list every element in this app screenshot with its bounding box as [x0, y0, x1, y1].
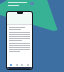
button[interactable]: Home [9, 63, 13, 67]
button[interactable]: Search [15, 63, 19, 67]
button[interactable]: Get the app [30, 2, 34, 5]
button[interactable]: Profile [26, 63, 30, 67]
button[interactable]: Saved [20, 63, 24, 67]
